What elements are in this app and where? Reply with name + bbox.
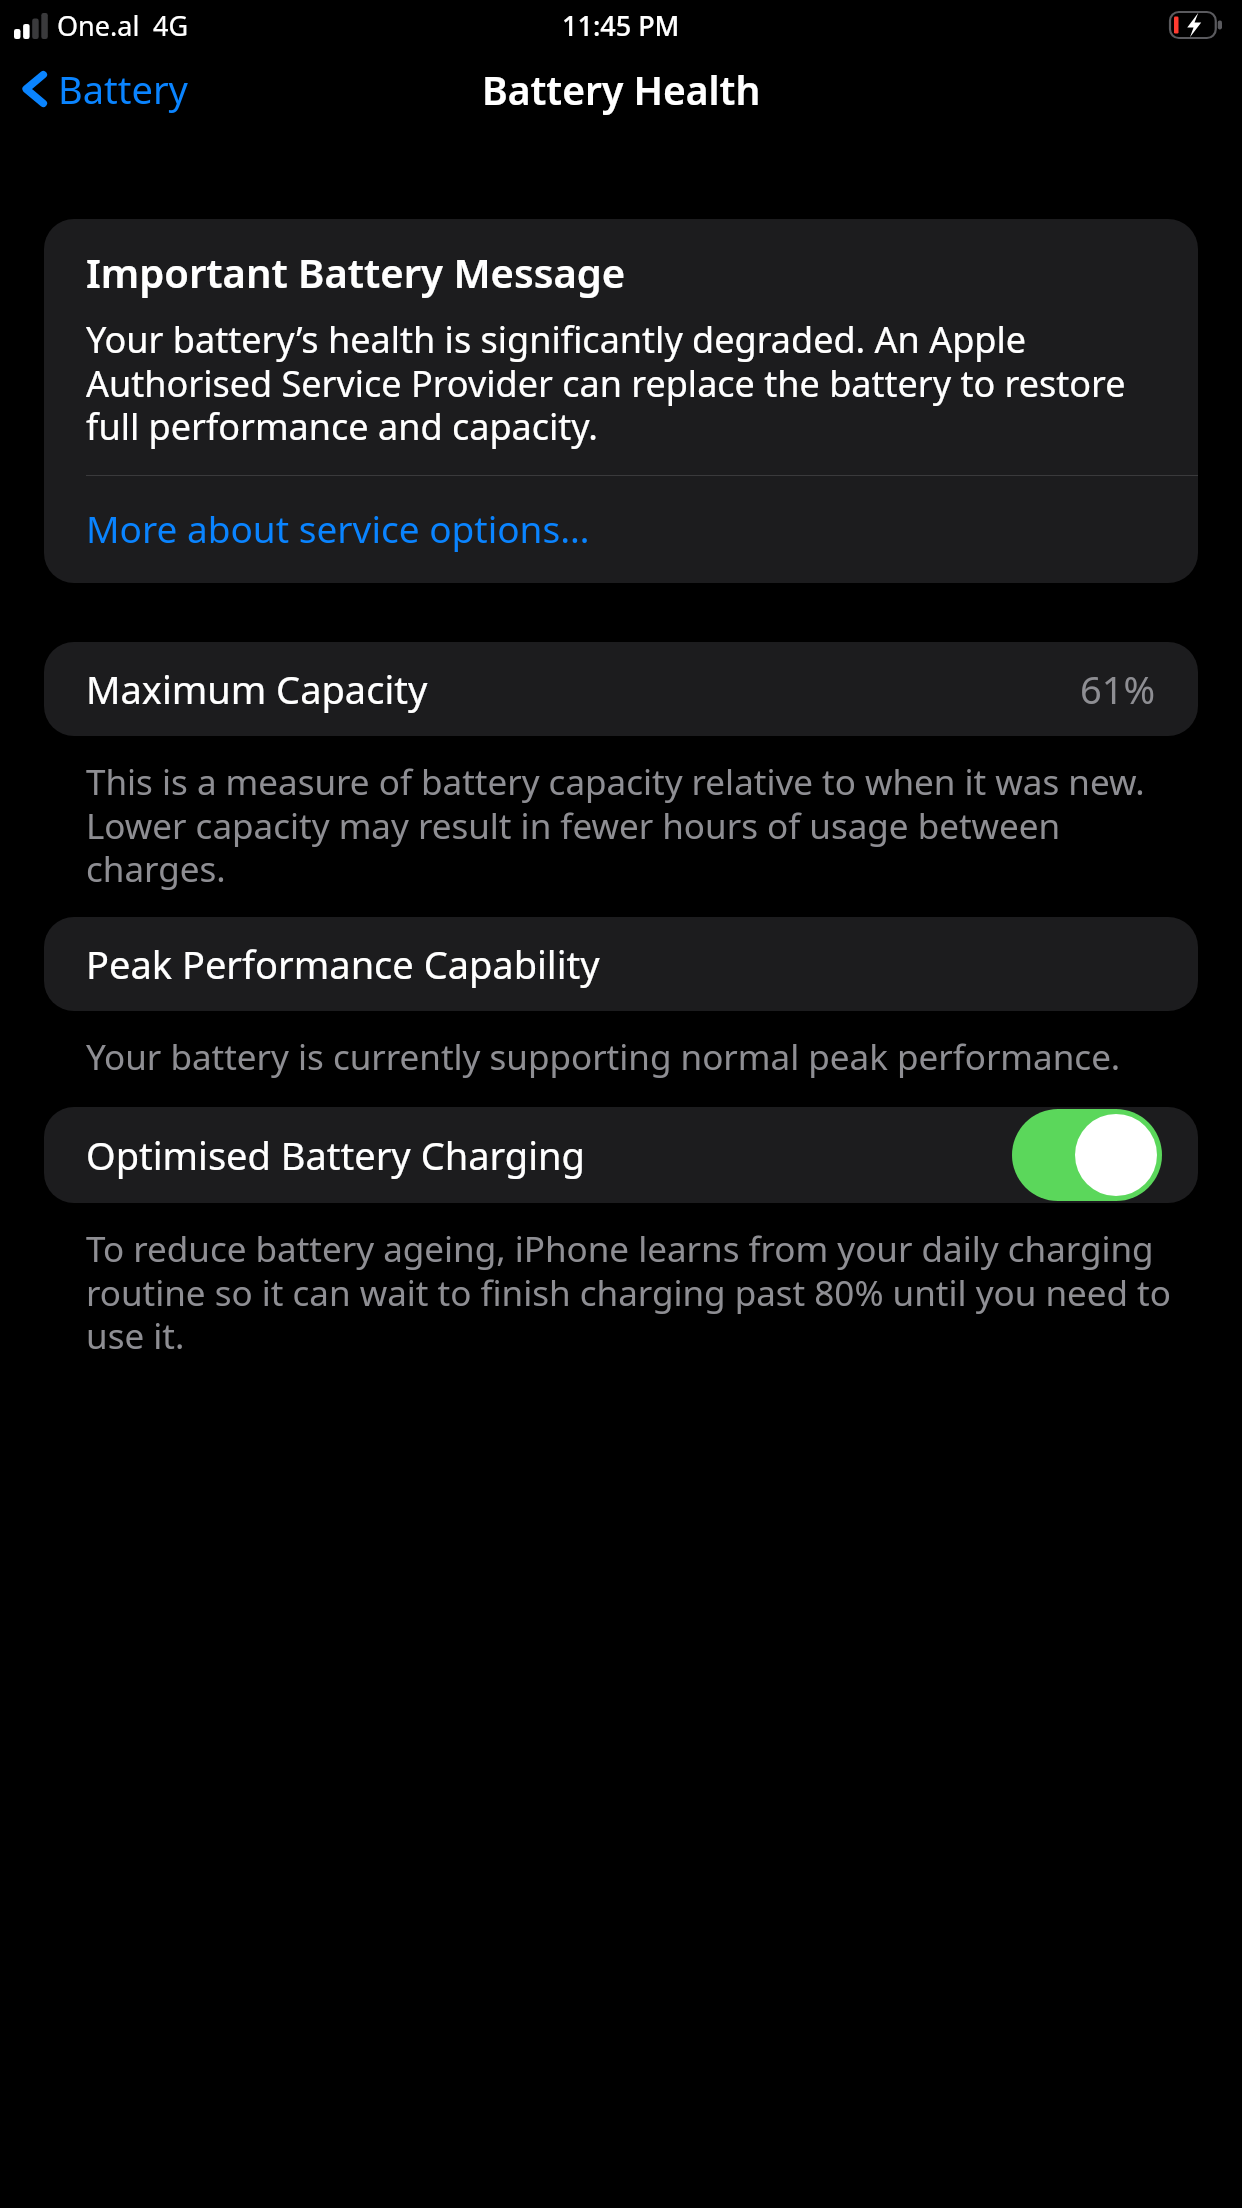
- button[interactable]: Battery: [0, 55, 204, 123]
- staticText: 4G: [153, 7, 189, 44]
- staticText: Important Battery Message: [86, 245, 626, 299]
- staticText: Battery Health: [482, 63, 761, 116]
- staticText: Optimised Battery Charging: [86, 1129, 585, 1181]
- button[interactable]: Peak Performance Capability: [44, 917, 1198, 1011]
- staticText: One.al: [57, 7, 140, 44]
- staticText: Your battery is currently supporting nor…: [86, 1033, 1121, 1081]
- staticText: Your battery’s health is significantly d…: [86, 315, 1162, 450]
- staticText: 61%: [1080, 663, 1156, 715]
- staticText: More about service options…: [86, 503, 590, 553]
- staticText: Battery: [58, 63, 188, 115]
- staticText: Peak Performance Capability: [86, 938, 600, 990]
- staticText: Maximum Capacity: [86, 663, 428, 715]
- button[interactable]: Optimised Battery Charging toggle, on: [1012, 1109, 1162, 1201]
- button[interactable]: Maximum Capacity: [44, 642, 1198, 736]
- staticText: To reduce battery ageing, iPhone learns …: [86, 1225, 1178, 1359]
- button[interactable]: More about service options…: [44, 476, 1198, 583]
- staticText: This is a measure of battery capacity re…: [86, 758, 1178, 892]
- staticText: 11:45 PM: [562, 7, 680, 44]
